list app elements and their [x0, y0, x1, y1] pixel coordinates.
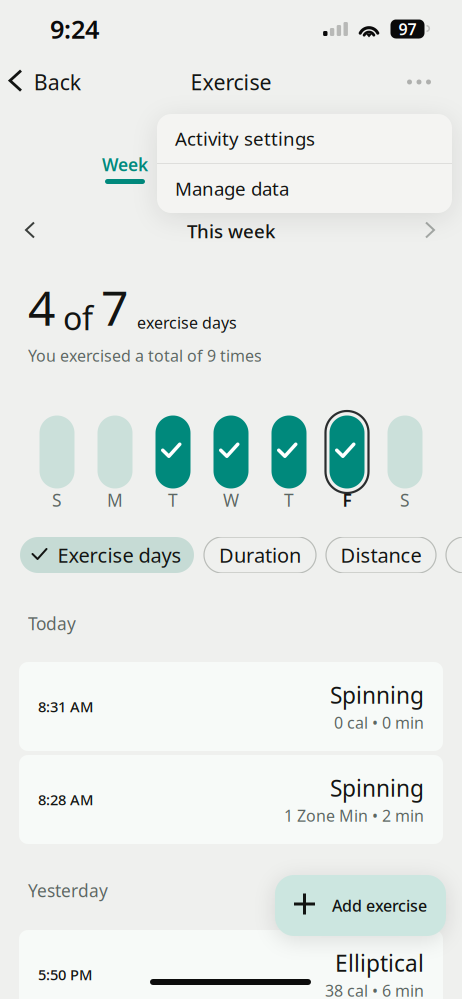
staticText: 5:50 PM: [38, 965, 92, 984]
staticText: 4: [28, 275, 55, 339]
staticText: Spinning: [330, 773, 424, 803]
staticText: This week: [187, 219, 275, 243]
button[interactable]: S: [34, 411, 80, 505]
button[interactable]: W: [208, 411, 254, 505]
staticText: Back: [34, 68, 81, 96]
staticText: exercise days: [137, 312, 237, 333]
button[interactable]: 8:28 AM: [19, 755, 443, 844]
staticText: 0 cal • 0 min: [334, 712, 424, 733]
button[interactable]: Add exercise: [275, 875, 446, 936]
button[interactable]: 5:50 PM: [19, 930, 443, 999]
staticText: You exercised a total of 9 times: [28, 345, 262, 366]
button[interactable]: M: [92, 411, 138, 505]
button[interactable]: Activity settings: [157, 114, 452, 163]
staticText: Elliptical: [335, 948, 424, 978]
button[interactable]: Week: [80, 153, 170, 184]
button[interactable]: Duration: [204, 537, 316, 573]
button[interactable]: Manage data: [157, 164, 452, 213]
staticText: 7: [101, 275, 128, 339]
staticText: Exercise days: [57, 542, 181, 568]
staticText: 38 cal • 6 min: [325, 980, 424, 999]
button[interactable]: Next week: [400, 211, 462, 251]
staticText: 8:28 AM: [38, 790, 93, 809]
staticText: 1 Zone Min • 2 min: [284, 805, 424, 826]
staticText: M: [107, 488, 123, 511]
staticText: S: [400, 488, 410, 511]
button[interactable]: Exercise days: [20, 537, 194, 573]
staticText: Yesterday: [28, 879, 108, 902]
staticText: S: [52, 488, 62, 511]
button[interactable]: Distance: [326, 537, 436, 573]
staticText: 97: [398, 18, 416, 40]
button[interactable]: T: [150, 411, 196, 505]
button[interactable]: S: [382, 411, 428, 505]
staticText: of: [55, 296, 101, 339]
button[interactable]: More options: [389, 58, 449, 106]
staticText: Exercise: [190, 68, 271, 96]
staticText: 8:31 AM: [38, 697, 93, 716]
staticText: Distance: [340, 542, 421, 568]
staticText: Activity settings: [175, 126, 315, 151]
button[interactable]: Back: [0, 58, 97, 106]
staticText: 9:24: [50, 12, 99, 46]
staticText: Today: [28, 612, 76, 635]
button[interactable]: 8:31 AM: [19, 662, 443, 751]
staticText: Spinning: [330, 680, 424, 710]
staticText: F: [342, 488, 351, 511]
staticText: T: [284, 488, 294, 511]
staticText: W: [223, 488, 239, 511]
staticText: T: [168, 488, 178, 511]
button[interactable]: F: [324, 411, 370, 505]
staticText: Week: [102, 153, 148, 176]
staticText: Manage data: [175, 176, 289, 201]
button[interactable]: Previous week: [0, 211, 62, 251]
staticText: Duration: [219, 542, 301, 568]
staticText: Add exercise: [332, 895, 427, 916]
button[interactable]: Cal: [446, 537, 462, 573]
button[interactable]: T: [266, 411, 312, 505]
